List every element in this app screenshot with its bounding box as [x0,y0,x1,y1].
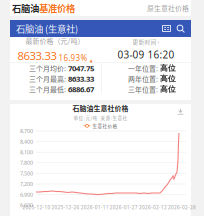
staticText: 8,400 [20,138,33,145]
staticText: 高位 [160,63,176,73]
staticText: 16.93% [58,52,87,63]
staticText: 6886.67 [68,84,94,94]
staticText: 6,600 [20,202,33,209]
button[interactable]: Download chart [177,108,184,115]
button[interactable]: Data table [162,24,171,33]
staticText: 三个月最低: [29,84,66,94]
staticText: 8,700 [20,127,33,135]
staticText: 一年位置: [128,63,158,73]
staticText: 石脑油 [12,1,39,15]
staticText: ▲ [89,58,92,63]
staticText: 三个月最高: [29,74,66,84]
staticText: 高位 [160,84,176,94]
staticText: 石脑油生意社价格 [72,103,128,113]
staticText: 7,200 [20,180,33,188]
staticText: 两年位置: [128,74,158,84]
button[interactable]: Search [176,24,185,33]
staticText: 7,800 [20,159,33,166]
staticText: 7047.75 [68,63,94,73]
staticText: 三年位置: [128,84,158,94]
staticText: 7,500 [20,170,33,177]
staticText: 8633.33 [17,48,56,63]
staticText: 石脑油 (生意社) [16,22,78,35]
staticText: 最新价格（元/吨） [25,36,84,46]
staticText: 三个月均价: [29,63,66,73]
staticText: 高位 [160,74,176,84]
staticText: 6,900 [20,191,33,198]
staticText: 2026-02-28 [168,204,196,211]
staticText: 2026-02-12 [139,204,167,211]
staticText: 2026-01-11 [81,204,109,211]
staticText: 更新时间 › [132,38,159,46]
staticText: 单位: 元/吨 来源: 生意社 [73,114,127,121]
staticText: 2026-01-27 [110,204,138,211]
staticText: 8633.33 [68,73,94,84]
staticText: 2025-12-26 [52,204,80,211]
staticText: 8,100 [20,149,33,156]
staticText: 03-09 16:20 [117,48,174,61]
staticText: 原生意社价格 [147,3,189,13]
staticText: 生意社价格 [92,122,117,129]
staticText: 2025-12-10 [22,204,50,211]
button[interactable]: 更新时间 › [101,39,191,60]
staticText: 基准价格 [39,1,75,15]
